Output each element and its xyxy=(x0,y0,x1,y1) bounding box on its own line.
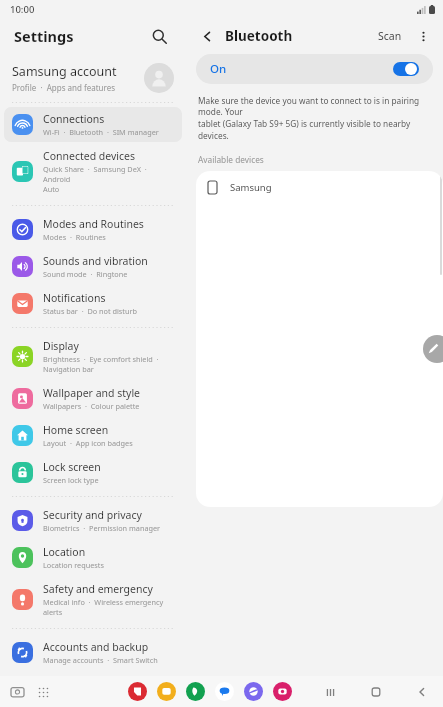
button[interactable]: Notifications xyxy=(4,286,182,321)
staticText: Connected devices xyxy=(43,149,136,163)
button[interactable]: Safety and emergency xyxy=(4,577,182,622)
staticText: Status bar · Do not disturb xyxy=(43,306,138,316)
staticText: Wallpapers · Colour palette xyxy=(43,401,140,411)
staticText: Manage accounts · Smart Switch xyxy=(43,655,158,665)
button[interactable]: Wallpaper and style xyxy=(4,381,182,416)
button[interactable]: Connected devices xyxy=(4,144,182,199)
button[interactable]: Location xyxy=(4,540,182,575)
staticText: 10:00 xyxy=(10,3,35,16)
button[interactable]: App a4 xyxy=(215,682,234,701)
button[interactable]: Accounts and backup xyxy=(4,635,182,670)
button[interactable]: Lock screen xyxy=(4,455,182,490)
button[interactable]: Samsung account xyxy=(12,54,174,102)
staticText: Accounts and backup xyxy=(43,640,149,654)
staticText: Settings xyxy=(14,26,74,46)
staticText: Scan xyxy=(378,29,402,43)
button[interactable]: Back xyxy=(411,681,433,703)
staticText: On xyxy=(210,61,227,77)
staticText: Display xyxy=(43,339,79,353)
staticText: Lock screen xyxy=(43,460,101,474)
staticText: Bluetooth xyxy=(225,27,293,45)
button[interactable]: Sounds and vibration xyxy=(4,249,182,284)
button[interactable]: Home xyxy=(365,681,387,703)
staticText: Connections xyxy=(43,112,105,126)
staticText: Modes and Routines xyxy=(43,217,144,231)
staticText: Layout · App icon badges xyxy=(43,438,133,448)
button[interactable]: App a1 xyxy=(128,682,147,701)
button[interactable]: Recent apps xyxy=(319,681,341,703)
staticText: Medical info · Wireless emergency alerts xyxy=(43,597,176,617)
button[interactable]: Scan xyxy=(373,26,407,46)
staticText: Sound mode · Ringtone xyxy=(43,269,128,279)
button[interactable]: On xyxy=(196,54,433,84)
button[interactable]: Samsung xyxy=(196,171,443,203)
button[interactable]: Back xyxy=(196,25,218,47)
staticText: Modes · Routines xyxy=(43,232,106,242)
staticText: Wallpaper and style xyxy=(43,386,141,400)
staticText: Safety and emergency xyxy=(43,582,153,596)
button[interactable]: Connections xyxy=(4,107,182,142)
button[interactable]: App a6 xyxy=(273,682,292,701)
button[interactable]: Home screen xyxy=(4,418,182,453)
staticText: Wi-Fi · Bluetooth · SIM manager xyxy=(43,127,159,137)
staticText: Location xyxy=(43,545,86,559)
button[interactable]: App a2 xyxy=(157,682,176,701)
button[interactable]: Recents xyxy=(6,681,28,703)
button[interactable]: Security and privacy xyxy=(4,503,182,538)
button[interactable]: Apps xyxy=(32,681,54,703)
staticText: Security and privacy xyxy=(43,508,142,522)
staticText: Profile · Apps and features xyxy=(12,82,116,93)
staticText: Notifications xyxy=(43,291,106,305)
button[interactable]: Display xyxy=(4,334,182,379)
staticText: Biometrics · Permission manager xyxy=(43,523,161,533)
staticText: Quick Share · Samsung DeX · Android Auto xyxy=(43,164,176,194)
staticText: Available devices xyxy=(198,154,264,165)
staticText: Home screen xyxy=(43,423,109,437)
staticText: Brightness · Eye comfort shield · Naviga… xyxy=(43,354,159,374)
staticText: Location requests xyxy=(43,560,104,570)
staticText: Samsung account xyxy=(12,63,117,80)
button[interactable]: Modes and Routines xyxy=(4,212,182,247)
button[interactable]: Edit xyxy=(423,335,443,363)
button[interactable]: App a5 xyxy=(244,682,263,701)
staticText: Make sure the device you want to connect… xyxy=(198,95,431,142)
staticText: Screen lock type xyxy=(43,475,99,485)
staticText: Sounds and vibration xyxy=(43,254,148,268)
button[interactable]: More options xyxy=(413,26,433,46)
button[interactable]: Search xyxy=(146,23,172,49)
staticText: Samsung xyxy=(230,181,272,194)
button[interactable]: App a3 xyxy=(186,682,205,701)
